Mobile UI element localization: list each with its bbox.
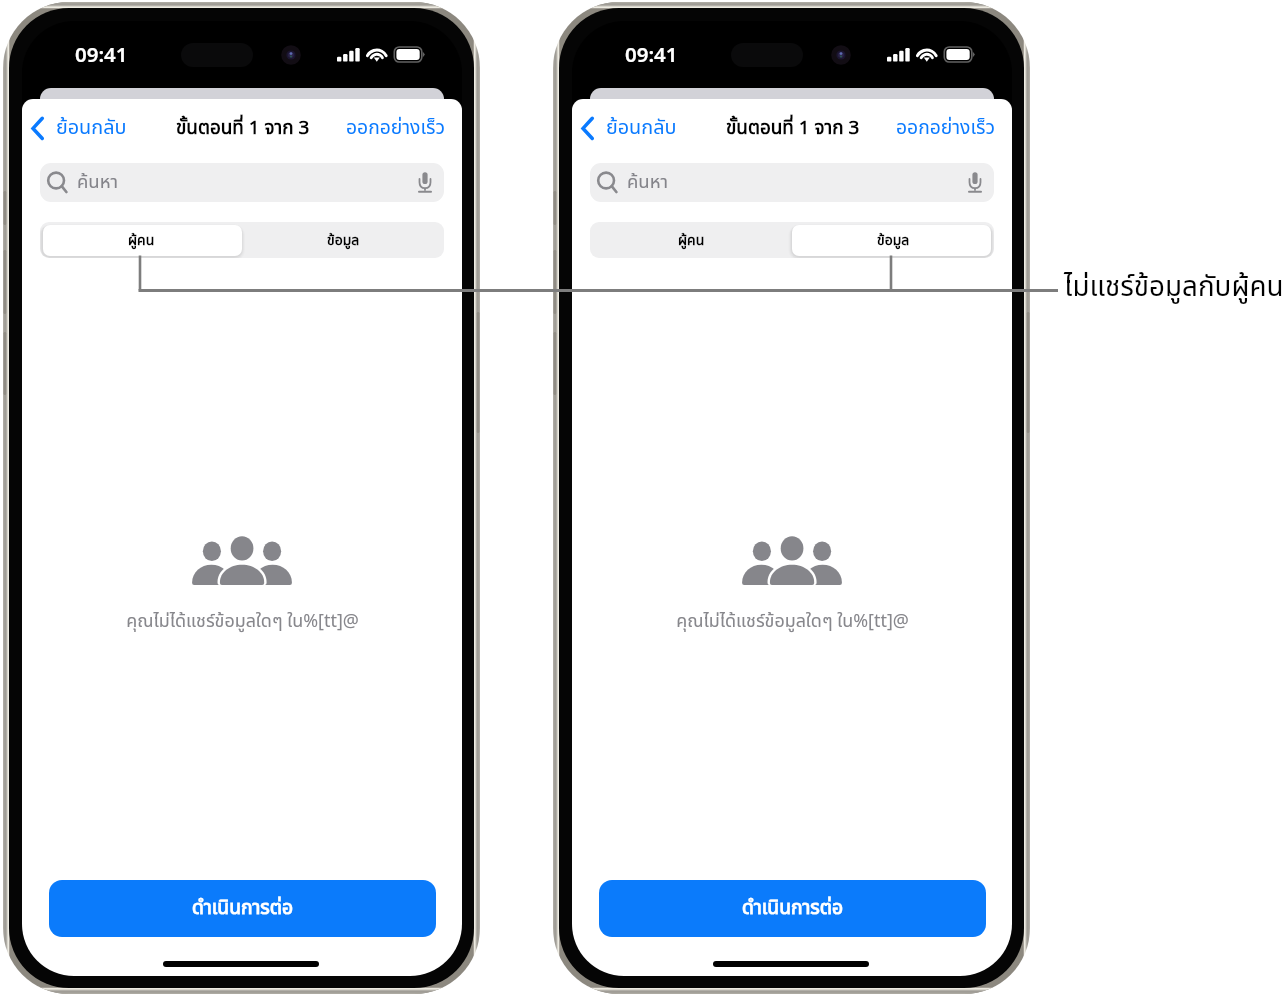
staticText: ดำเนินการต่อ: [192, 894, 294, 923]
other: Dictate: [968, 172, 982, 198]
staticText: ข้อมูล: [327, 230, 360, 251]
button[interactable]: ค้นหา: [40, 163, 444, 202]
staticText: ไม่แชร์ข้อมูลกับผู้คน: [1064, 267, 1284, 309]
button[interactable]: ข้อมูล: [792, 222, 994, 258]
other: Dictate: [418, 172, 432, 198]
staticText: ผู้คน: [678, 230, 705, 251]
button[interactable]: ผู้คน: [590, 222, 792, 258]
staticText: 09:41: [75, 40, 128, 68]
button[interactable]: ข้อมูล: [242, 222, 444, 258]
button[interactable]: ออกอย่างเร็ว: [894, 106, 997, 151]
staticText: ข้อมูล: [877, 230, 910, 251]
staticText: ดำเนินการต่อ: [742, 894, 844, 923]
staticText: ผู้คน: [128, 230, 155, 251]
staticText: ขั้นตอนที่ 1 จาก 3: [176, 114, 310, 143]
staticText: ขั้นตอนที่ 1 จาก 3: [726, 114, 860, 143]
staticText: 09:41: [625, 40, 678, 68]
button[interactable]: ดำเนินการต่อ: [599, 880, 986, 937]
button[interactable]: ย้อนกลับ: [580, 105, 680, 151]
button[interactable]: ผู้คน: [40, 222, 242, 258]
staticText: ย้อนกลับ: [56, 113, 127, 143]
staticText: คุณไม่ได้แชร์ข้อมูลใดๆ ใน%[tt]@: [676, 608, 909, 635]
button[interactable]: ค้นหา: [590, 163, 994, 202]
staticText: ค้นหา: [627, 168, 669, 196]
button[interactable]: ดำเนินการต่อ: [49, 880, 436, 937]
button[interactable]: ย้อนกลับ: [30, 105, 130, 151]
staticText: คุณไม่ได้แชร์ข้อมูลใดๆ ใน%[tt]@: [126, 608, 359, 635]
staticText: ค้นหา: [77, 168, 119, 196]
button[interactable]: ออกอย่างเร็ว: [344, 106, 447, 151]
staticText: ย้อนกลับ: [606, 113, 677, 143]
